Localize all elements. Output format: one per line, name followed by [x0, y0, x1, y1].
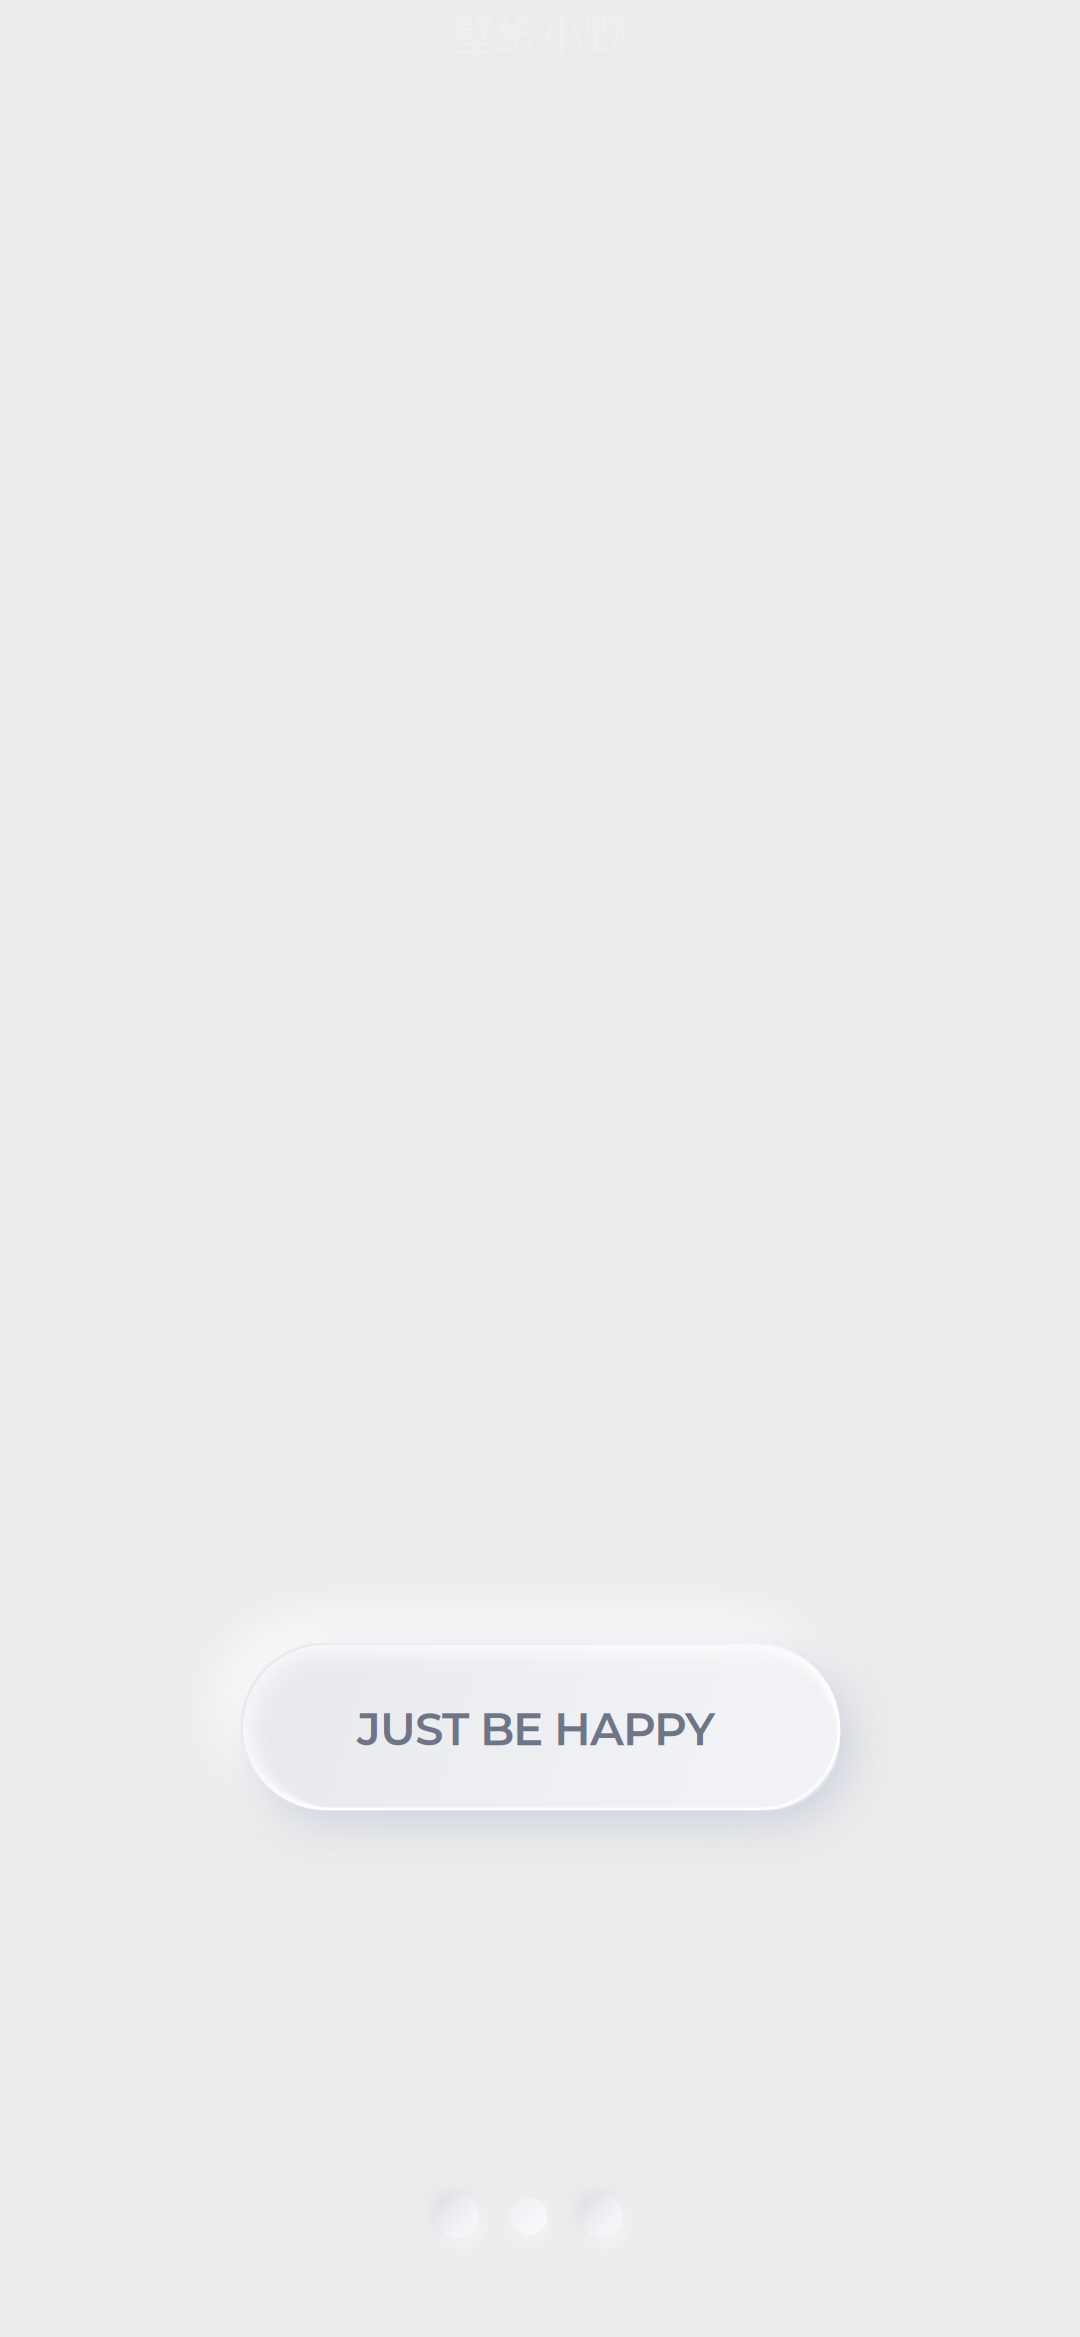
staticText: JUST BE HAPPY — [357, 1701, 715, 1757]
button[interactable]: JUST BE HAPPY — [151, 1553, 929, 1899]
